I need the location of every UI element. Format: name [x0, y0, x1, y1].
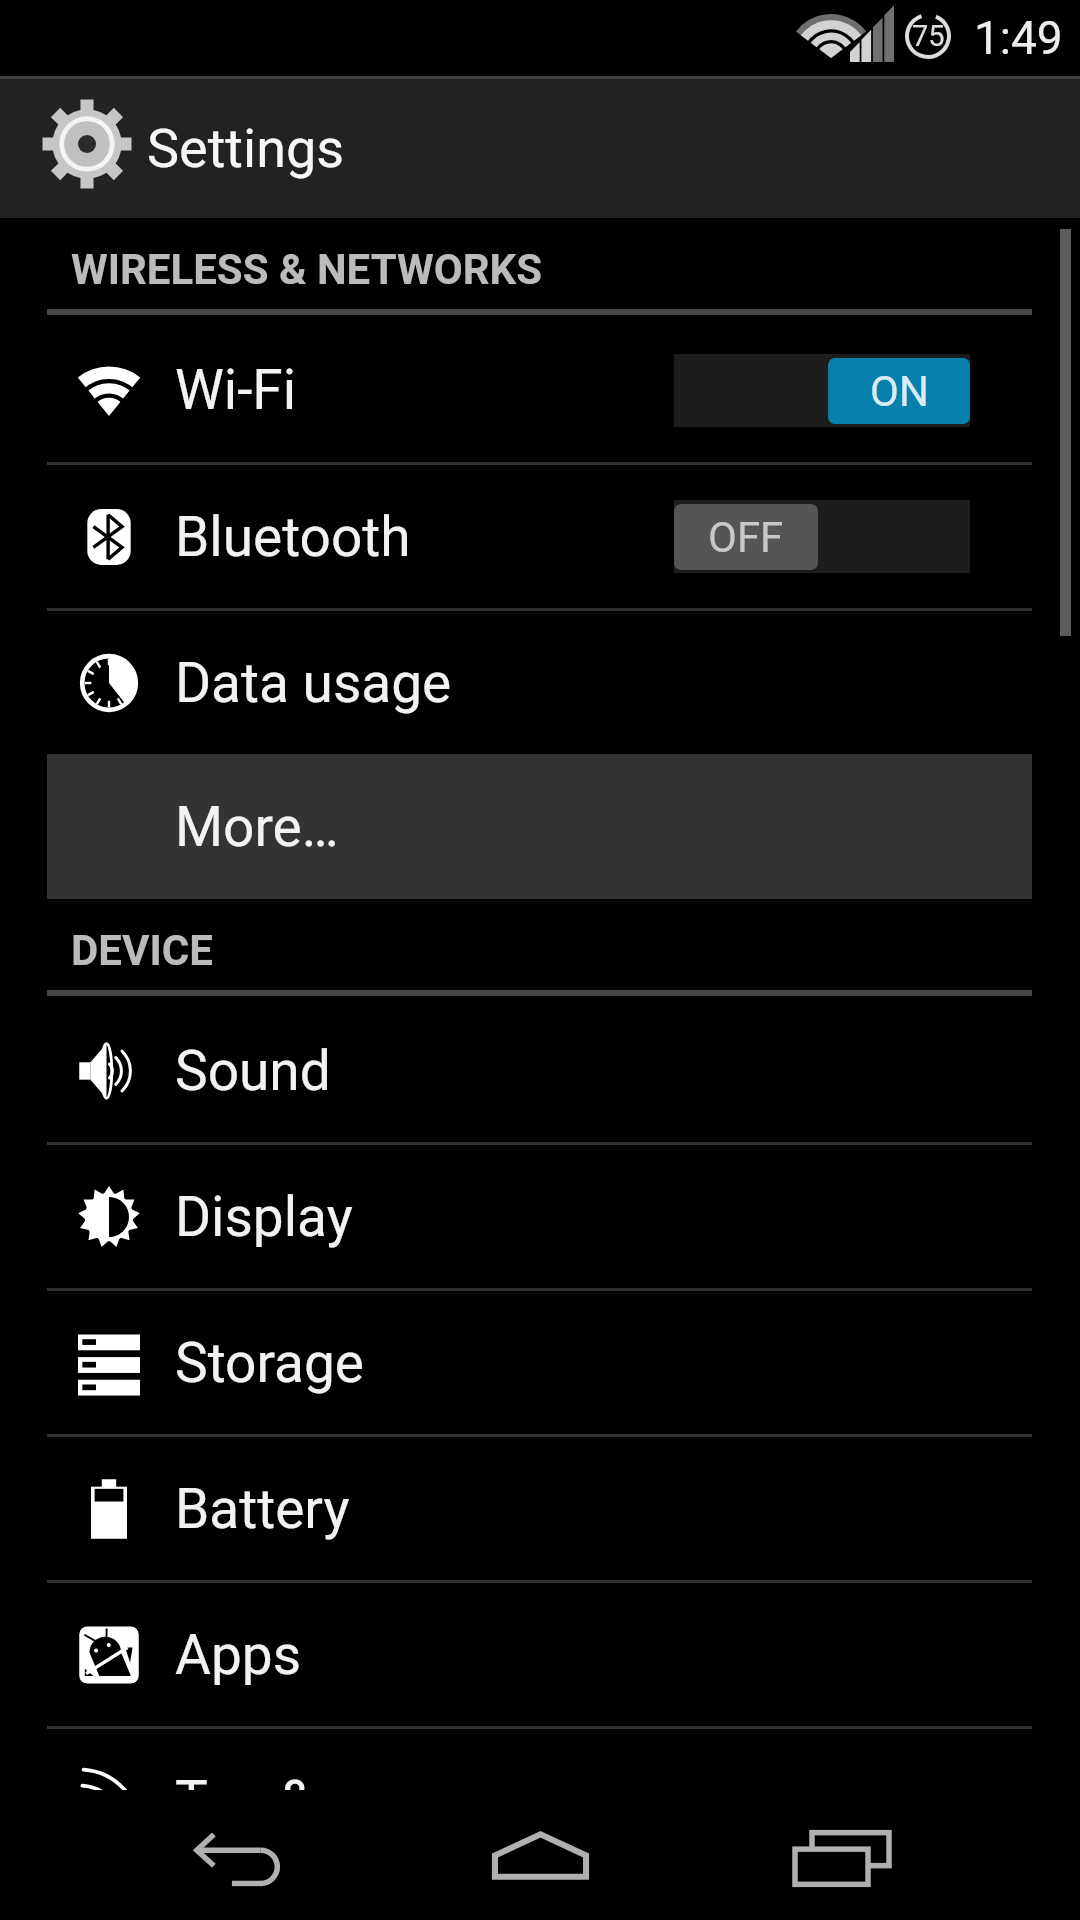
- staticText: OFF: [708, 513, 784, 562]
- button[interactable]: Tap & pay: [0, 1729, 1080, 1790]
- button[interactable]: Back: [120, 1790, 360, 1920]
- staticText: More…: [175, 795, 339, 859]
- button[interactable]: Bluetooth: [0, 465, 1080, 608]
- staticText: ON: [870, 367, 929, 416]
- button[interactable]: Recent apps: [723, 1790, 963, 1920]
- staticText: 1:49: [974, 11, 1063, 65]
- staticText: Bluetooth: [175, 505, 411, 569]
- staticText: DEVICE: [71, 926, 213, 975]
- staticText: 75: [912, 19, 945, 53]
- button[interactable]: Sound: [0, 999, 1080, 1142]
- staticText: WIRELESS & NETWORKS: [71, 245, 542, 294]
- button[interactable]: Home: [420, 1790, 660, 1920]
- staticText: Wi-Fi: [175, 358, 297, 422]
- button[interactable]: OFF: [674, 500, 970, 573]
- button[interactable]: Data usage: [0, 611, 1080, 754]
- button[interactable]: Apps: [0, 1583, 1080, 1726]
- staticText: Data usage: [175, 651, 452, 715]
- button[interactable]: Battery: [0, 1437, 1080, 1580]
- button[interactable]: More…: [47, 754, 1032, 899]
- staticText: Battery: [175, 1477, 350, 1541]
- staticText: Settings: [147, 117, 345, 180]
- button[interactable]: Storage: [0, 1291, 1080, 1434]
- staticText: Display: [175, 1185, 353, 1249]
- button[interactable]: Display: [0, 1145, 1080, 1288]
- button[interactable]: ON: [674, 354, 970, 427]
- staticText: Sound: [175, 1039, 331, 1103]
- button[interactable]: Wi-Fi: [0, 318, 1080, 462]
- staticText: Tap & pay: [175, 1769, 414, 1790]
- staticText: Storage: [175, 1331, 365, 1395]
- staticText: Apps: [175, 1623, 302, 1687]
- button[interactable]: Settings: [0, 79, 1080, 218]
